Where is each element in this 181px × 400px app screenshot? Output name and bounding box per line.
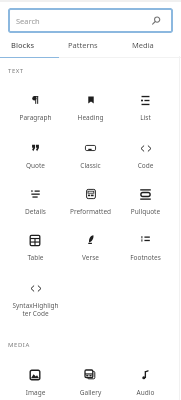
- staticText: TEXT: [8, 67, 24, 75]
- staticText: Search: [16, 16, 40, 26]
- staticText: Quote: [12, 161, 59, 170]
- staticText: Media: [132, 40, 154, 50]
- button[interactable]: Verse: [63, 230, 118, 274]
- staticText: Classic: [67, 161, 114, 170]
- button[interactable]: SyntaxHighlighter Code: [8, 278, 63, 322]
- button[interactable]: Audio: [118, 365, 173, 400]
- staticText: Footnotes: [122, 253, 169, 262]
- staticText: Gallery: [67, 388, 114, 397]
- button[interactable]: Patterns: [53, 33, 112, 56]
- button[interactable]: Table: [8, 230, 63, 274]
- button[interactable]: Classic: [63, 138, 118, 182]
- button[interactable]: Footnotes: [118, 230, 173, 274]
- staticText: Blocks: [11, 40, 35, 50]
- staticText: Table: [12, 253, 59, 262]
- button[interactable]: Heading: [63, 90, 118, 134]
- button[interactable]: Paragraph: [8, 90, 63, 134]
- button[interactable]: List: [118, 90, 173, 134]
- staticText: SyntaxHighlighter Code: [12, 301, 59, 318]
- button[interactable]: Media: [113, 33, 172, 56]
- staticText: Heading: [67, 113, 114, 122]
- staticText: Paragraph: [12, 113, 59, 122]
- staticText: Code: [122, 161, 169, 170]
- button[interactable]: Preformatted: [63, 184, 118, 228]
- button[interactable]: Code: [118, 138, 173, 182]
- staticText: Pullquote: [122, 207, 169, 216]
- other: Search: [151, 15, 162, 26]
- staticText: Preformatted: [67, 207, 114, 216]
- button[interactable]: Gallery: [63, 365, 118, 400]
- staticText: List: [122, 113, 169, 122]
- staticText: Patterns: [68, 40, 98, 50]
- button[interactable]: Blocks: [0, 33, 52, 56]
- button[interactable]: Image: [8, 365, 63, 400]
- staticText: Verse: [67, 253, 114, 262]
- staticText: Details: [12, 207, 59, 216]
- button[interactable]: Quote: [8, 138, 63, 182]
- button[interactable]: Details: [8, 184, 63, 228]
- staticText: Image: [12, 388, 59, 397]
- button[interactable]: Pullquote: [118, 184, 173, 228]
- button[interactable]: Search: [8, 8, 173, 33]
- staticText: Audio: [122, 388, 169, 397]
- staticText: MEDIA: [8, 341, 30, 349]
